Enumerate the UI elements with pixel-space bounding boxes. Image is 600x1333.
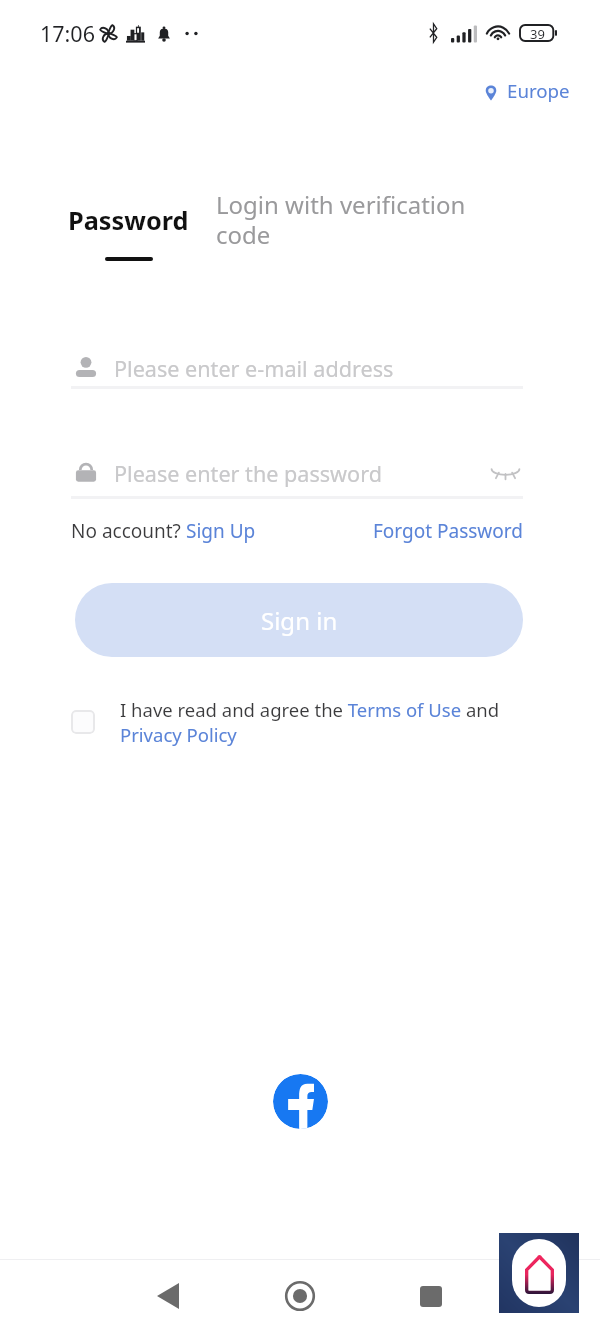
button[interactable]: Show password bbox=[487, 453, 523, 489]
staticText: Please enter the password bbox=[114, 459, 382, 488]
staticText: 39 bbox=[530, 25, 545, 41]
button[interactable]: Sign Up bbox=[186, 518, 256, 544]
staticText: Sign Up bbox=[186, 518, 256, 544]
staticText: Europe bbox=[507, 78, 570, 103]
button[interactable]: Forgot Password bbox=[373, 518, 523, 544]
staticText: Password bbox=[68, 203, 189, 237]
button[interactable]: Home bbox=[276, 1272, 324, 1320]
staticText: Please enter e-mail address bbox=[114, 354, 394, 383]
staticText: Forgot Password bbox=[373, 518, 523, 544]
button[interactable]: I have read and agree the Terms of Use a… bbox=[120, 697, 505, 748]
button[interactable]: Password bbox=[68, 203, 189, 261]
staticText: Login with verification code bbox=[216, 188, 468, 251]
button[interactable]: Sign in bbox=[75, 583, 523, 657]
button[interactable]: Home app shortcut bbox=[499, 1233, 579, 1313]
staticText: Sign in bbox=[261, 604, 338, 637]
staticText: 17:06 bbox=[40, 19, 95, 48]
staticText: No account? bbox=[71, 518, 186, 544]
staticText: I have read and agree the Terms of Use a… bbox=[120, 697, 505, 748]
button[interactable]: Recents bbox=[407, 1272, 455, 1320]
button[interactable]: Login with verification code bbox=[216, 188, 468, 251]
button[interactable]: Sign in with Facebook bbox=[273, 1074, 328, 1129]
button[interactable]: Agree to terms bbox=[71, 710, 95, 734]
button[interactable]: Europe bbox=[479, 74, 576, 107]
button[interactable]: Back bbox=[144, 1272, 192, 1320]
